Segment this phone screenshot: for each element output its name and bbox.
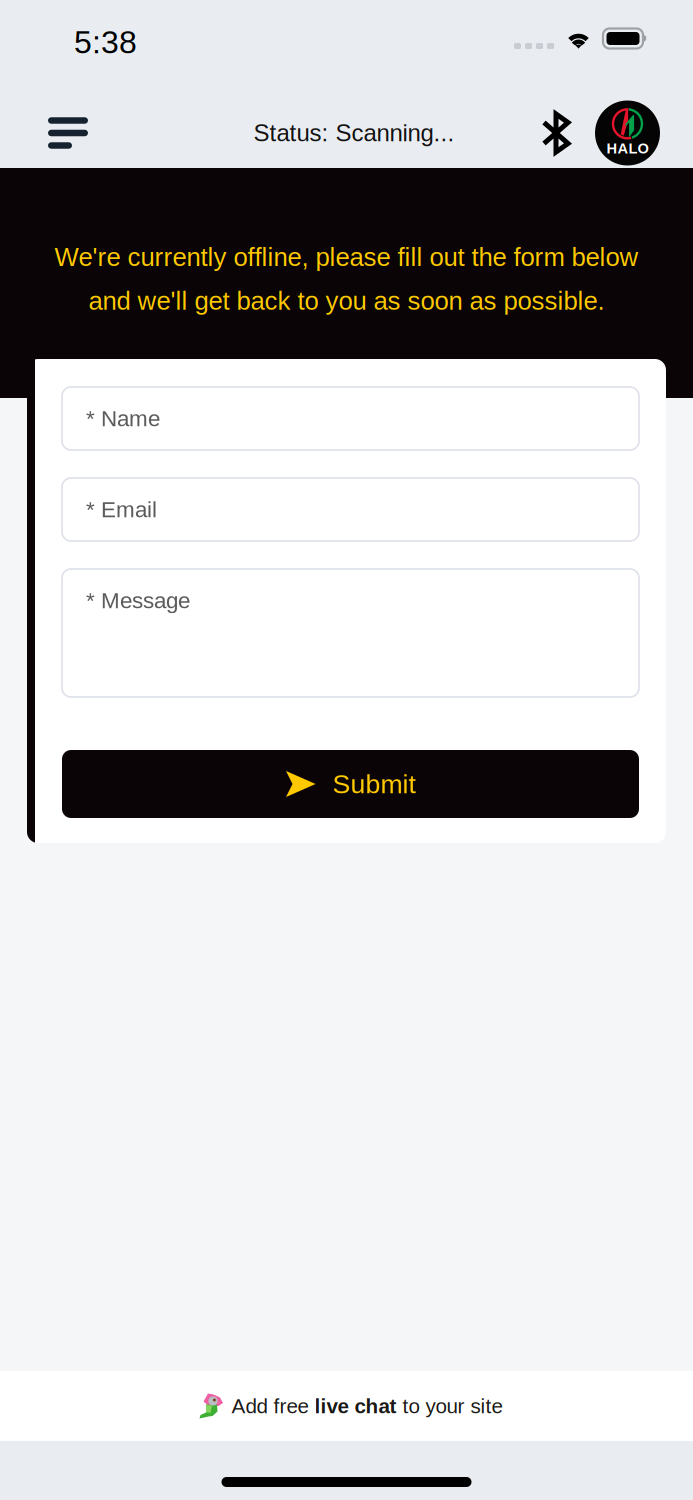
- button[interactable]: HALO device: [595, 100, 660, 165]
- staticText: 5:38: [74, 24, 137, 60]
- button[interactable]: * Message: [62, 569, 639, 697]
- staticText: and we'll get back to you as soon as pos…: [88, 286, 604, 315]
- staticText: Status: Scanning...: [253, 120, 454, 146]
- staticText: * Email: [86, 497, 157, 522]
- staticText: We're currently offline, please fill out…: [54, 243, 638, 271]
- staticText: HALO: [606, 140, 648, 157]
- staticText: * Message: [86, 588, 190, 613]
- staticText: Add free live chat to your site: [231, 1395, 502, 1417]
- button[interactable]: Add free live chat to your site: [0, 1371, 693, 1441]
- button[interactable]: * Name: [62, 387, 639, 450]
- button[interactable]: * Email: [62, 478, 639, 541]
- button[interactable]: Submit: [62, 750, 639, 818]
- button[interactable]: Menu: [48, 102, 104, 164]
- staticText: * Name: [86, 406, 160, 431]
- staticText: Submit: [332, 769, 415, 799]
- button[interactable]: Bluetooth: [517, 102, 571, 164]
